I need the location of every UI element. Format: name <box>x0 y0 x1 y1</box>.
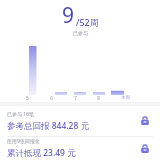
staticText: 已参与 16笔 <box>7 111 35 118</box>
staticText: 5 <box>26 95 29 101</box>
staticText: 本周 <box>121 95 130 101</box>
staticText: 累计抵现 23.49 元 <box>7 147 76 159</box>
staticText: 7 <box>74 95 77 101</box>
button[interactable]: 已参与 16笔 <box>0 106 160 136</box>
staticText: 8 <box>97 95 100 101</box>
staticText: /52周 <box>76 16 99 28</box>
staticText: 已参与 <box>73 30 88 36</box>
other: 参考总回报详情 <box>138 114 152 128</box>
button[interactable]: 使用9张回报金 <box>0 137 160 160</box>
staticText: 参考总回报 844.28 元 <box>7 120 90 132</box>
staticText: 使用9张回报金 <box>7 138 40 145</box>
staticText: 9 <box>62 1 75 30</box>
other: 累计抵现详情 <box>138 142 152 156</box>
staticText: 6 <box>50 95 53 101</box>
